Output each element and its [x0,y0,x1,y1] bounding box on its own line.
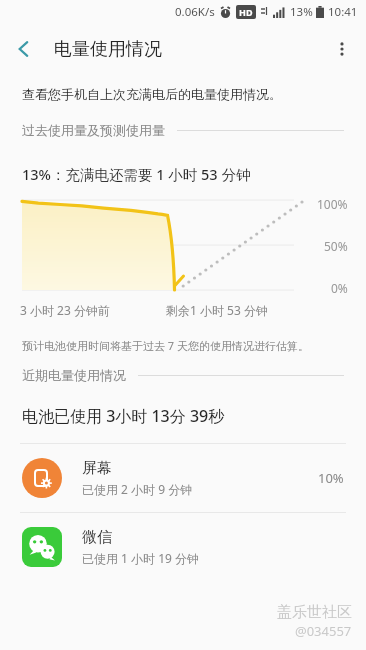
staticText: 100% [317,196,348,212]
staticText: 13%：充满电还需要 1 小时 53 分钟 [22,164,251,184]
staticText: 查看您手机自上次充满电后的电量使用情况。 [22,86,282,102]
staticText: 13% [290,4,313,20]
staticText: 电量使用情况 [54,38,162,61]
staticText: 已使用 1 小时 19 分钟 [82,550,200,566]
staticText: 电池已使用 3小时 13分 39秒 [22,405,225,427]
staticText: 近期电量使用情况 [22,367,126,383]
staticText: 剩余1 小时 53 分钟 [166,302,268,318]
staticText: 0% [331,280,348,296]
staticText: 盖乐世社区 [277,603,352,622]
staticText: 10:41 [328,4,358,20]
staticText: 过去使用量及预测使用量 [22,122,165,138]
staticText: 50% [324,238,348,254]
staticText: 10% [318,469,344,487]
staticText: HD [239,6,253,18]
staticText: 3 小时 23 分钟前 [20,302,110,318]
staticText: 预计电池使用时间将基于过去 7 天您的使用情况进行估算。 [22,338,310,353]
staticText: 屏幕 [82,459,112,478]
staticText: @034557 [295,622,352,640]
staticText: 0.06K/s [175,4,215,20]
staticText: 已使用 2 小时 9 分钟 [82,481,193,497]
button[interactable]: 微信 [0,513,366,581]
button[interactable]: 屏幕 [0,444,366,512]
button[interactable]: More options [318,25,366,73]
staticText: 微信 [82,528,112,547]
button[interactable]: Back [0,25,48,73]
